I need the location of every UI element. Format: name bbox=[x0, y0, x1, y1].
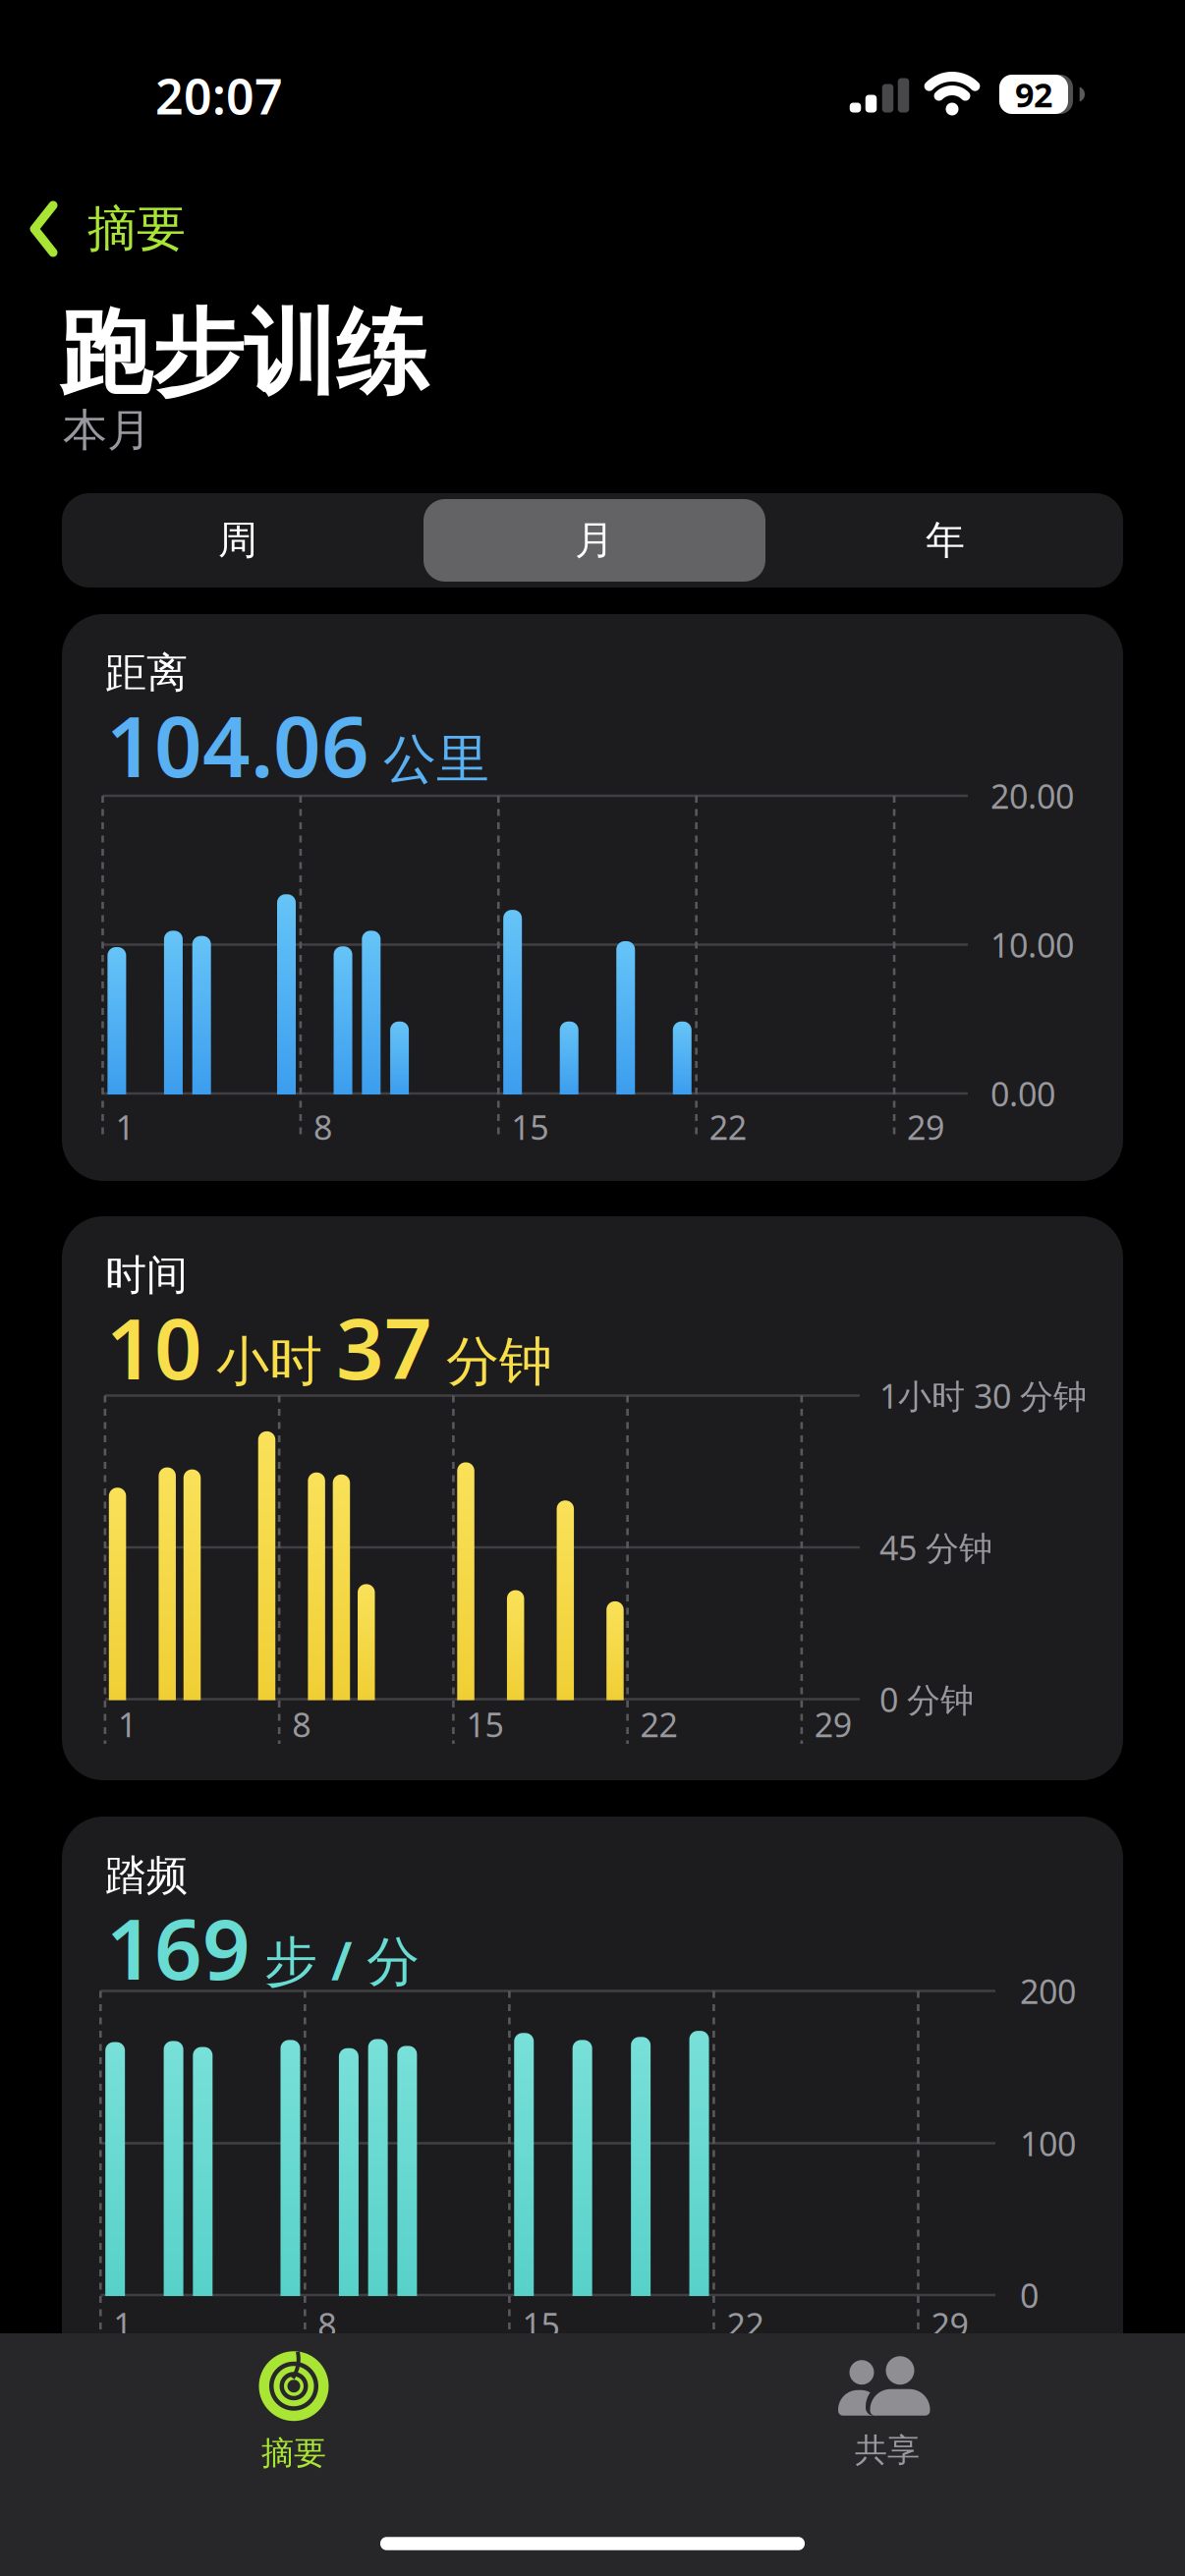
staticText: 1小时 30 分钟 bbox=[879, 1373, 1087, 1418]
staticText: 共享 bbox=[855, 2430, 920, 2470]
staticText: 距离 bbox=[105, 648, 188, 698]
staticText: 29 bbox=[931, 2302, 968, 2347]
staticText: 22 bbox=[727, 2302, 764, 2347]
button[interactable]: 周 bbox=[63, 493, 413, 588]
staticText: 月 bbox=[575, 516, 614, 564]
staticText: 踏频 bbox=[105, 1850, 188, 1901]
staticText: 29 bbox=[907, 1105, 944, 1149]
staticText: 29 bbox=[814, 1702, 852, 1746]
staticText: 小时 bbox=[216, 1329, 322, 1394]
staticText: 10 bbox=[106, 1292, 202, 1402]
staticText: 0.00 bbox=[990, 1071, 1055, 1116]
staticText: 周 bbox=[218, 516, 257, 564]
staticText: 169 bbox=[106, 1892, 251, 2003]
staticText: 37 bbox=[336, 1292, 432, 1402]
staticText: 20:07 bbox=[155, 63, 283, 128]
staticText: 摘要 bbox=[261, 2433, 326, 2473]
staticText: 0 分钟 bbox=[879, 1677, 974, 1721]
button[interactable]: 共享 bbox=[740, 2348, 1035, 2476]
staticText: 分钟 bbox=[446, 1329, 552, 1394]
staticText: 年 bbox=[926, 516, 965, 564]
button[interactable]: 返回摘要 bbox=[32, 190, 258, 268]
button[interactable]: 年 bbox=[770, 493, 1120, 588]
staticText: 步 / 分 bbox=[264, 1925, 420, 1995]
staticText: 8 bbox=[318, 2302, 336, 2347]
staticText: 15 bbox=[522, 2302, 559, 2347]
staticText: 摘要 bbox=[87, 199, 186, 259]
staticText: 8 bbox=[313, 1105, 332, 1149]
staticText: 1 bbox=[113, 2302, 132, 2347]
button[interactable]: 月 bbox=[420, 493, 769, 588]
staticText: 92 bbox=[1015, 72, 1052, 117]
staticText: 0 bbox=[1020, 2273, 1039, 2317]
staticText: 100 bbox=[1020, 2121, 1076, 2165]
staticText: 公里 bbox=[383, 727, 489, 792]
staticText: 104.06 bbox=[106, 689, 369, 800]
staticText: 本月 bbox=[63, 403, 151, 458]
button[interactable]: 摘要 bbox=[146, 2348, 441, 2476]
staticText: 45 分钟 bbox=[879, 1525, 992, 1570]
staticText: 15 bbox=[511, 1105, 549, 1149]
staticText: 22 bbox=[640, 1702, 678, 1746]
staticText: 8 bbox=[292, 1702, 311, 1746]
staticText: 1 bbox=[115, 1105, 134, 1149]
staticText: 200 bbox=[1020, 1969, 1076, 2013]
staticText: 时间 bbox=[105, 1250, 188, 1301]
staticText: 跑步训练 bbox=[59, 297, 428, 410]
staticText: 1 bbox=[118, 1702, 136, 1746]
staticText: 22 bbox=[709, 1105, 746, 1149]
staticText: 20.00 bbox=[990, 774, 1074, 818]
staticText: 15 bbox=[466, 1702, 503, 1746]
staticText: 10.00 bbox=[990, 922, 1074, 967]
